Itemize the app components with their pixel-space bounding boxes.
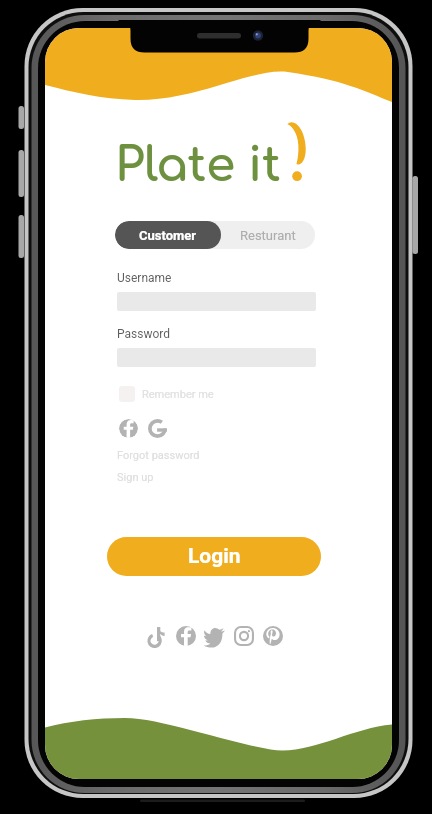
staticText: Forgot password (117, 449, 200, 462)
staticText: Password (117, 327, 171, 341)
button[interactable]: Login (107, 537, 321, 576)
button[interactable]: TikTok (147, 626, 167, 646)
staticText: Remember me (142, 388, 214, 401)
staticText: Login (188, 544, 241, 569)
button[interactable]: Twitter (205, 626, 225, 646)
button[interactable]: Forgot password (117, 449, 200, 462)
button[interactable]: Pinterest (263, 626, 283, 646)
button[interactable]: Instagram (234, 626, 254, 646)
staticText: Username (117, 271, 172, 285)
staticText: Plate it (115, 140, 281, 192)
button[interactable]: Sign in with Google (148, 419, 167, 438)
button[interactable]: Facebook (176, 626, 196, 646)
button[interactable]: Sign up (117, 471, 154, 484)
button[interactable]: Resturant (221, 221, 315, 249)
button[interactable]: Remember me (119, 386, 214, 402)
button[interactable]: Customer (115, 221, 221, 249)
staticText: Sign up (117, 471, 154, 484)
staticText: Resturant (240, 228, 296, 243)
button[interactable]: Sign in with Facebook (119, 419, 138, 438)
staticText: Customer (139, 228, 197, 243)
